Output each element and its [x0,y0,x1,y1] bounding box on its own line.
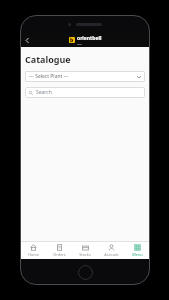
staticText: --- Select Plant --- [29,73,69,80]
button[interactable]: Orders [46,242,72,259]
staticText: Stocks [79,252,91,257]
staticText: Home [28,252,39,257]
staticText: Menu [132,252,143,257]
staticText: b [70,37,74,43]
button[interactable]: Orientbell logo [69,35,102,45]
staticText: tiles [77,42,82,45]
staticText: Catalogue [25,53,71,65]
button[interactable]: Search [25,87,145,98]
button[interactable]: Menu [124,242,150,259]
staticText: Orders [53,252,66,257]
button[interactable]: Home [20,242,46,259]
button[interactable]: Back [20,33,34,47]
button[interactable]: --- Select Plant --- [25,71,145,82]
staticText: Account [104,252,119,257]
staticText: orientbell [77,35,102,42]
button[interactable]: Stocks [72,242,98,259]
staticText: Search [36,89,52,96]
button[interactable]: Account [98,242,124,259]
